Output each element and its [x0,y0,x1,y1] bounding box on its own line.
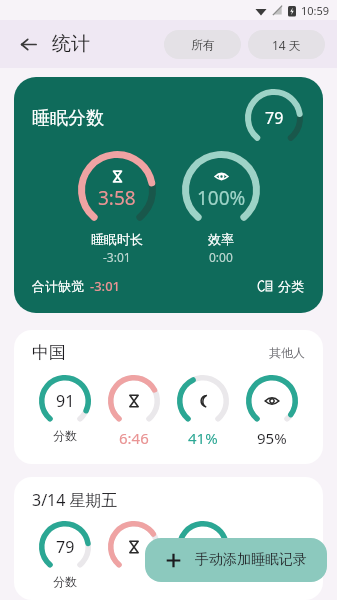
staticText: 79 [265,107,284,129]
staticText: 6:46 [119,428,149,448]
staticText: 79 [56,536,75,558]
staticText: 3/14 星期五 [32,489,118,511]
staticText: 100% [197,185,246,211]
staticText: 分类 [278,278,304,294]
staticText: 睡眠时长 [91,231,143,247]
staticText: 睡眠分数 [32,107,104,130]
button[interactable]: 中国 [14,330,323,464]
staticText: 其他人 [269,345,305,360]
staticText: 统计 [52,32,90,56]
staticText: 效率 [208,231,234,247]
staticText: 3:58 [98,185,136,211]
button[interactable]: 睡眠分数 [14,77,323,313]
staticText: 分数 [53,428,77,443]
button[interactable]: 分类 [255,275,307,297]
staticText: 合计缺觉 [32,278,84,294]
button[interactable]: 手动添加睡眠记录 [145,538,327,582]
staticText: -3:01 [103,249,131,265]
staticText: 91 [56,390,75,412]
staticText: 10:59 [301,3,330,18]
staticText: -3:01 [90,277,121,295]
button[interactable]: 14 天 [248,30,325,59]
staticText: 手动添加睡眠记录 [195,551,307,569]
staticText: 所有 [191,37,215,52]
staticText: 41% [188,428,218,448]
staticText: 0:00 [209,249,233,265]
button[interactable]: 3/14 星期五 [14,477,323,600]
staticText: 分数 [53,574,77,589]
staticText: 中国 [32,342,66,363]
button[interactable]: 所有 [164,30,241,59]
staticText: 95% [257,428,287,448]
button[interactable]: Back [8,24,48,64]
staticText: 14 天 [272,37,301,53]
